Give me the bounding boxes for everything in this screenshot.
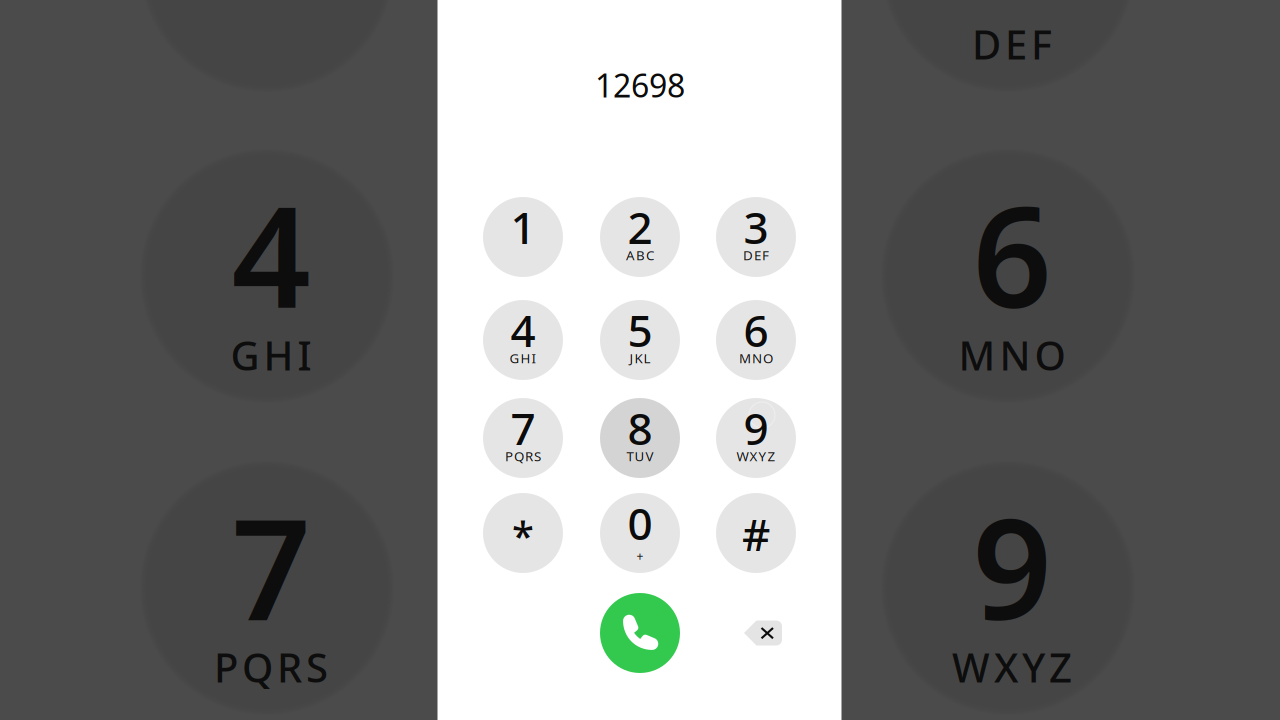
staticText: 7 — [231, 474, 310, 658]
staticText: + — [636, 548, 643, 564]
staticText: W X Y Z — [736, 447, 775, 465]
staticText: 5 — [627, 301, 652, 359]
button[interactable]: 6 — [716, 300, 796, 380]
staticText: M N O — [739, 349, 773, 367]
staticText: 3 — [743, 198, 768, 256]
staticText: D E F — [972, 17, 1052, 70]
button[interactable]: 3 — [716, 197, 796, 277]
staticText: 9 — [743, 399, 768, 457]
button[interactable]: 2 — [600, 197, 680, 277]
staticText: 6 — [972, 162, 1051, 346]
staticText: 3 — [972, 0, 1051, 35]
staticText: 4 — [231, 162, 310, 346]
staticText: P Q R S — [505, 447, 541, 465]
button[interactable]: 8 — [600, 398, 680, 478]
staticText: 0 — [627, 494, 652, 552]
button[interactable]: # — [716, 493, 796, 573]
staticText: 6 — [743, 301, 768, 359]
staticText: 9 — [972, 474, 1051, 658]
staticText: 7 — [510, 399, 535, 457]
button[interactable]: 0 — [600, 493, 680, 573]
staticText: T U V — [626, 447, 653, 465]
button[interactable]: * — [483, 493, 563, 573]
staticText: A B C — [626, 246, 654, 264]
staticText: D E F — [743, 246, 769, 264]
staticText: 2 — [627, 198, 652, 256]
staticText: * — [512, 508, 534, 561]
button[interactable]: 5 — [600, 300, 680, 380]
button[interactable]: Delete — [723, 593, 803, 673]
staticText: M N O — [958, 328, 1065, 381]
staticText: G H I — [509, 349, 536, 367]
staticText: # — [742, 505, 770, 563]
staticText: G H I — [230, 328, 311, 381]
button[interactable]: Call — [600, 593, 680, 673]
button[interactable]: 4 — [483, 300, 563, 380]
staticText: 4 — [510, 301, 535, 359]
button[interactable]: 7 — [483, 398, 563, 478]
staticText: 12698 — [595, 64, 685, 106]
button[interactable]: 1 — [483, 197, 563, 277]
staticText: W X Y Z — [952, 640, 1072, 693]
button[interactable]: 9 — [716, 398, 796, 478]
staticText: J K L — [629, 349, 650, 367]
staticText: 1 — [510, 198, 535, 256]
staticText: P Q R S — [214, 640, 328, 693]
staticText: 8 — [627, 399, 652, 457]
